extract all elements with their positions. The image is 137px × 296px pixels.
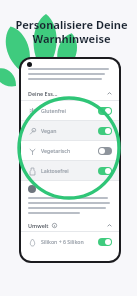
other: Info — [52, 223, 57, 228]
staticText: Personalisiere Deine Warnhinweise — [14, 17, 129, 46]
staticText: Vegetarisch — [41, 147, 71, 154]
button[interactable]: Silikon + 6 Silikon — [21, 232, 119, 251]
button[interactable]: Vegetarisch — [21, 141, 119, 160]
button[interactable]: Deaktiviert — [98, 147, 112, 155]
staticText: Umwelt — [28, 222, 49, 229]
button[interactable]: Vegan — [21, 121, 119, 140]
staticText: Laktosefrei — [41, 167, 69, 174]
button[interactable]: Aktiviert — [98, 238, 112, 246]
staticText: Vegan — [41, 127, 57, 134]
button[interactable]: Deine Ess... — [21, 87, 119, 100]
staticText: Glutenfrei — [41, 107, 66, 114]
button[interactable]: Aktiviert — [98, 127, 112, 135]
staticText: Deine Ess... — [28, 90, 58, 97]
button[interactable]: Aktiviert — [98, 107, 112, 115]
button[interactable]: Umwelt — [21, 219, 119, 231]
button[interactable]: Glutenfrei — [21, 101, 119, 120]
button[interactable]: Aktiviert — [98, 167, 112, 175]
staticText: Silikon + 6 Silikon — [41, 238, 84, 245]
button[interactable]: Laktosefrei — [21, 161, 119, 180]
